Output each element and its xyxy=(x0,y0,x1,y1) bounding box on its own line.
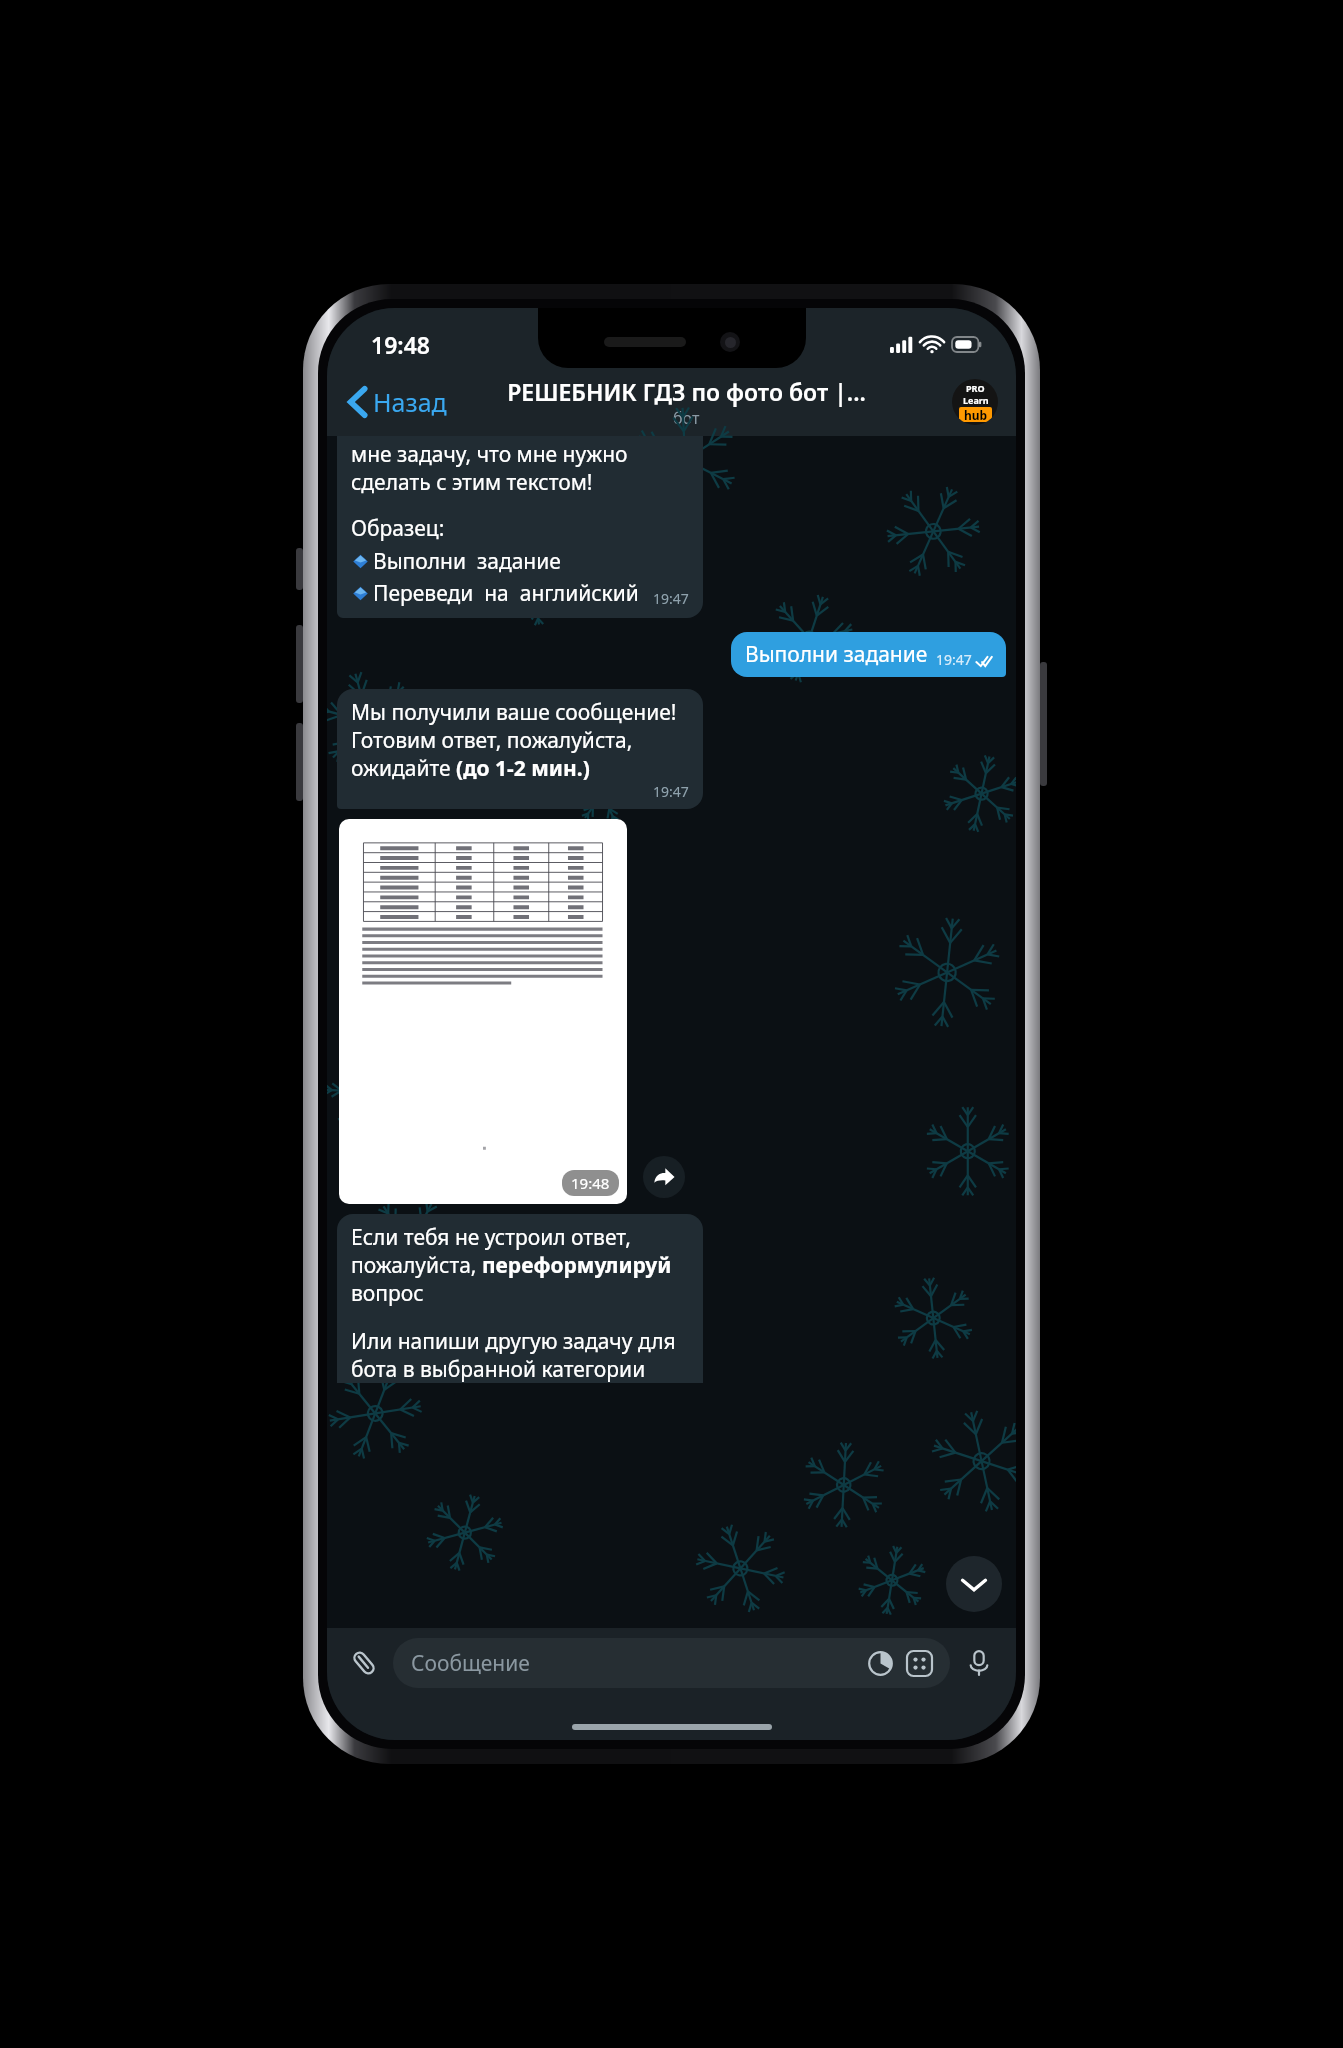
staticText: Сообщение xyxy=(411,1649,530,1678)
button[interactable]: Profile avatar xyxy=(952,379,998,425)
button[interactable]: 19:48 xyxy=(339,819,627,1204)
staticText: Назад xyxy=(373,385,447,419)
staticText: 19:47 xyxy=(653,782,689,801)
button[interactable]: Forward xyxy=(643,1156,685,1198)
staticText: РЕШЕБНИК ГДЗ по фото бот |... xyxy=(507,376,866,407)
staticText: 19:48 xyxy=(571,1173,610,1193)
staticText: бот xyxy=(673,407,700,429)
button[interactable]: Мы получили ваше сообщение! Готовим отве… xyxy=(337,689,703,809)
button[interactable]: Назад xyxy=(345,381,451,423)
button[interactable]: Attach xyxy=(341,1640,387,1686)
button[interactable]: Выполни задание xyxy=(731,632,1006,677)
button[interactable]: Voice message xyxy=(956,1640,1002,1686)
staticText: hub xyxy=(964,407,988,422)
staticText: Если тебя не устроил ответ, пожалуйста, … xyxy=(351,1223,689,1307)
staticText: Learn xyxy=(963,394,989,406)
staticText: Образец: xyxy=(351,514,445,543)
staticText: 19:47 xyxy=(936,650,972,669)
staticText: Переведи на английский xyxy=(373,579,639,608)
staticText: Мы получили ваше сообщение! Готовим отве… xyxy=(351,698,689,782)
staticText: мне задачу, что мне нужно сделать с этим… xyxy=(351,440,689,496)
staticText: 19:47 xyxy=(653,589,689,608)
staticText: Выполни задание xyxy=(745,640,928,669)
button[interactable]: Scroll to bottom xyxy=(946,1556,1002,1612)
staticText: Или напиши другую задачу для бота в выбр… xyxy=(351,1327,689,1383)
button[interactable]: Если тебя не устроил ответ, пожалуйста, … xyxy=(337,1214,703,1383)
staticText: 19:48 xyxy=(371,329,430,360)
button[interactable]: мне задачу, что мне нужно сделать с этим… xyxy=(337,436,703,618)
staticText: PRO xyxy=(966,382,985,394)
button[interactable]: Сообщение xyxy=(393,1638,950,1688)
staticText: Выполни задание xyxy=(373,547,561,576)
